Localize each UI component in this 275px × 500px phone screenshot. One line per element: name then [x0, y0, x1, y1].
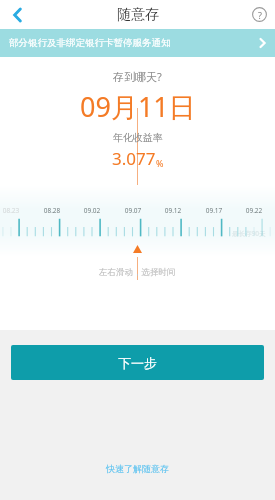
button[interactable]: Back: [0, 0, 34, 29]
button[interactable]: Help: [243, 0, 275, 29]
button[interactable]: 部分银行及非绑定银行卡暂停服务通知: [0, 29, 275, 57]
staticText: 下一步: [118, 355, 157, 371]
staticText: 左右滑动，选择时间: [99, 267, 176, 278]
staticText: 快速了解随意存: [106, 463, 169, 474]
staticText: 08.28: [38, 206, 66, 215]
button[interactable]: Slide to pick date: [0, 217, 275, 239]
staticText: %: [156, 157, 164, 169]
staticText: 随意存: [117, 6, 159, 24]
staticText: 08.23: [0, 206, 25, 215]
button[interactable]: 快速了解随意存: [100, 459, 175, 478]
staticText: 09.12: [159, 206, 187, 215]
staticText: 09月11日: [80, 88, 196, 125]
staticText: 存到哪天?: [113, 69, 162, 84]
staticText: 09.17: [200, 206, 228, 215]
staticText: 部分银行及非绑定银行卡暂停服务通知: [9, 37, 259, 49]
staticText: 09.22: [240, 206, 268, 215]
staticText: 09.07: [119, 206, 147, 215]
staticText: 09.02: [78, 206, 106, 215]
staticText: 年化收益率: [113, 131, 163, 144]
staticText: 3.077: [112, 147, 156, 170]
staticText: ?: [258, 9, 262, 21]
staticText: 最长存90天: [232, 229, 266, 238]
button[interactable]: 下一步: [11, 345, 264, 380]
